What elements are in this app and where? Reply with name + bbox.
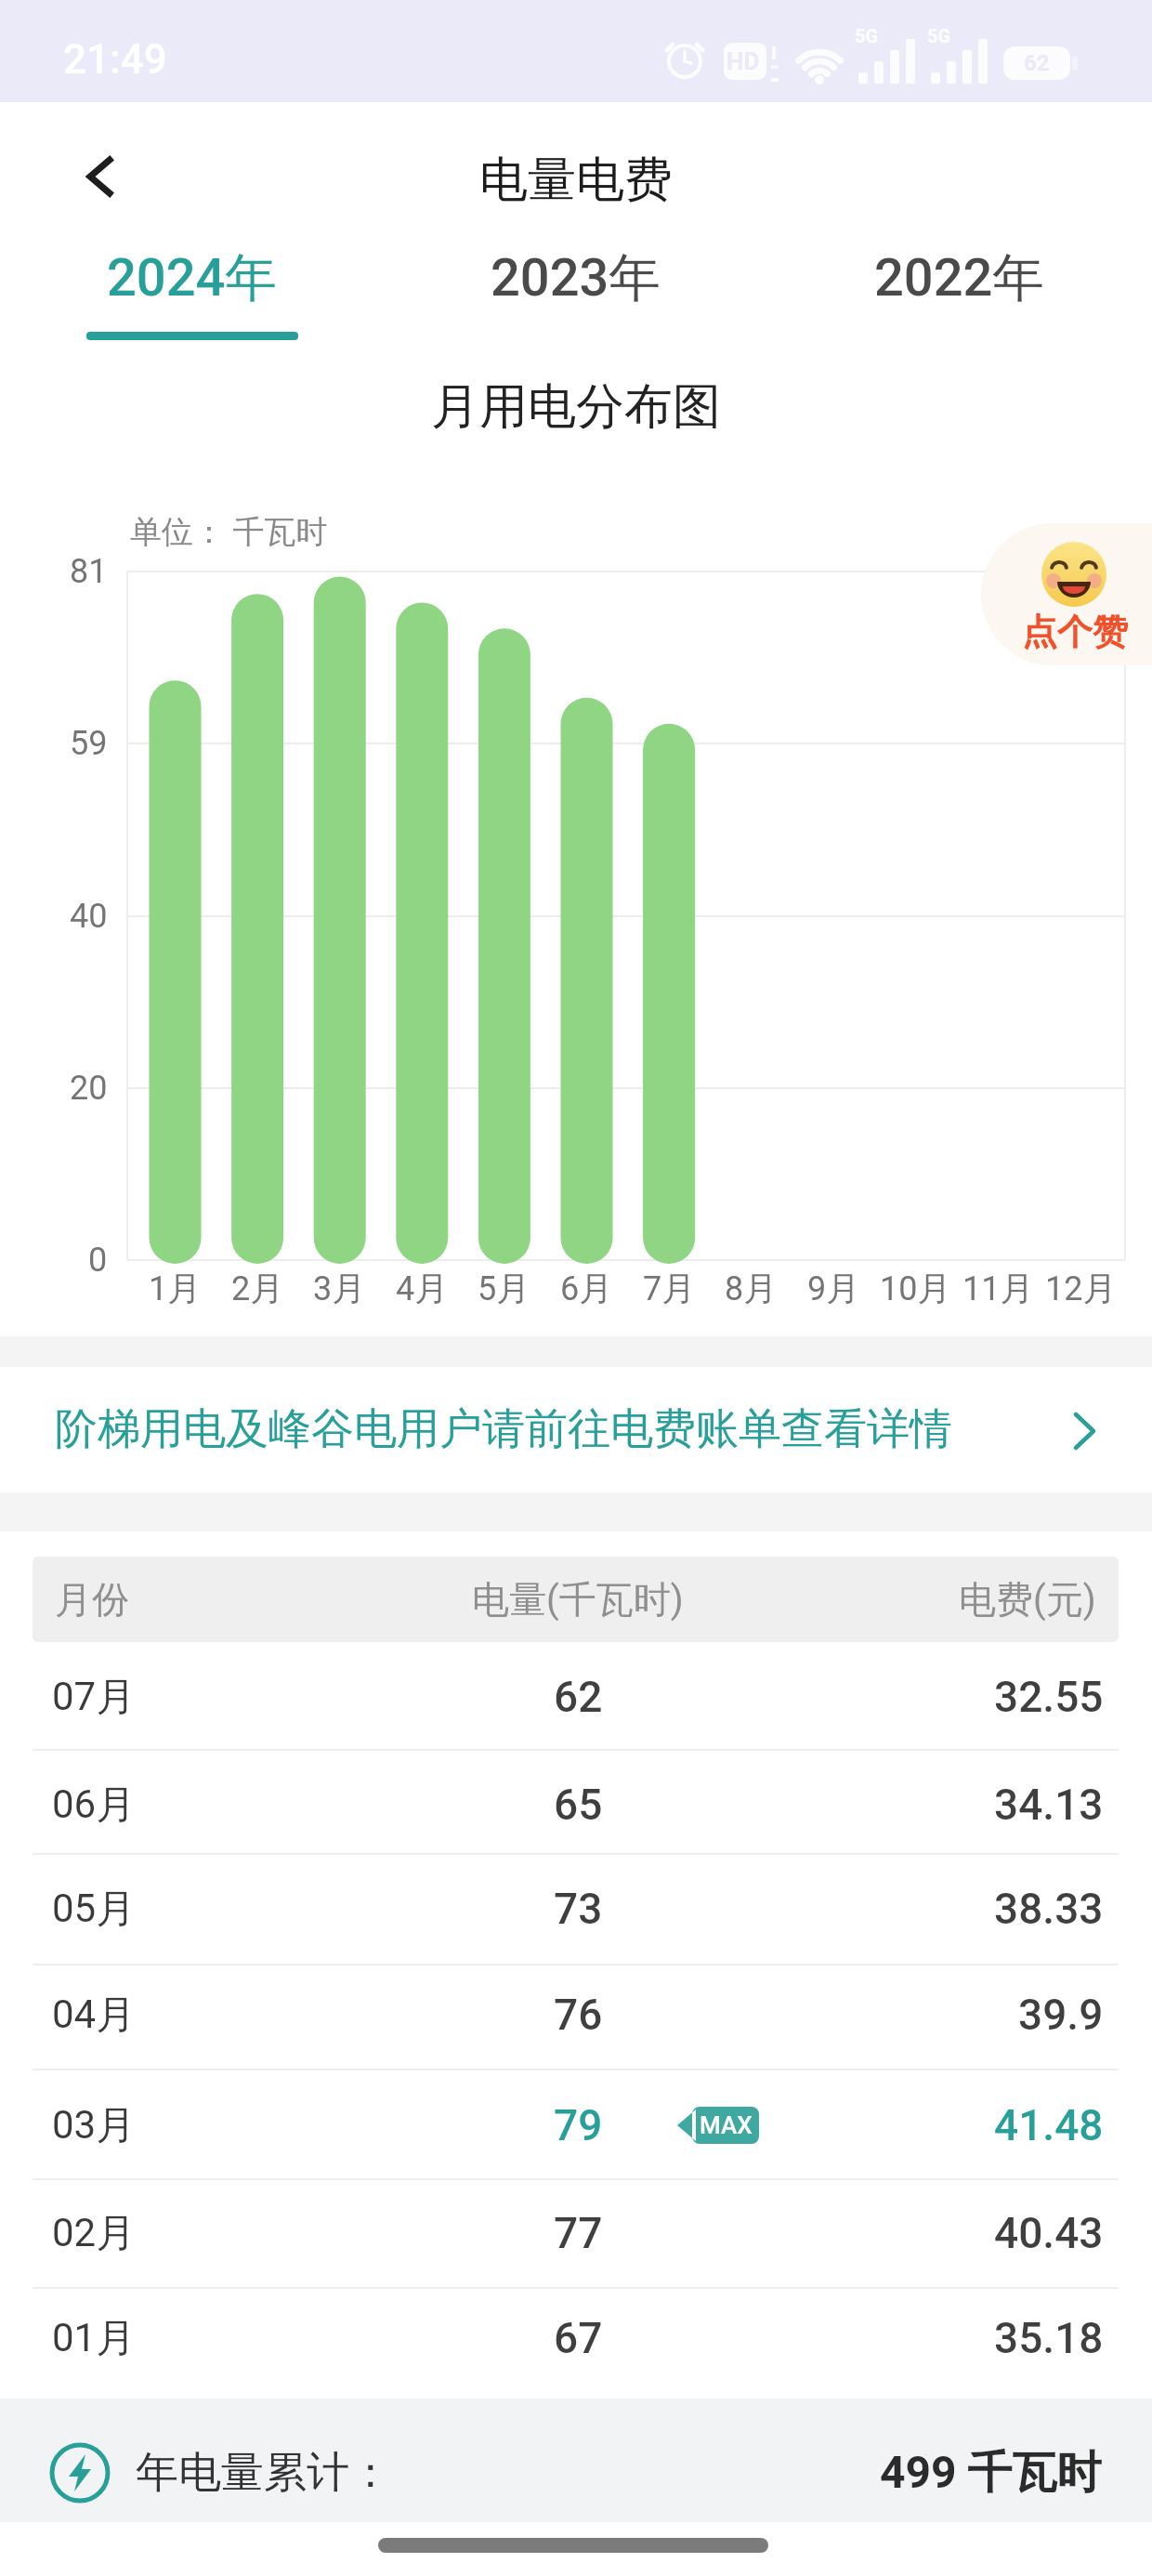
staticText: 2月 [231, 1268, 284, 1309]
staticText: 01月 [52, 2314, 136, 2363]
staticText: 35.18 [994, 2313, 1104, 2363]
staticText: 阶梯用电及峰谷电用户请前往电费账单查看详情 [55, 1402, 952, 1456]
staticText: 76 [554, 1990, 603, 2040]
staticText: 4月 [396, 1268, 449, 1309]
staticText: 79 [554, 2100, 603, 2150]
staticText: 11月 [962, 1268, 1034, 1309]
staticText: 59 [70, 724, 108, 763]
staticText: 7月 [643, 1268, 696, 1309]
staticText: 电量(千瓦时) [472, 1576, 684, 1623]
staticText: 07月 [52, 1673, 136, 1722]
staticText: 20 [70, 1069, 108, 1108]
staticText: 62 [1024, 50, 1050, 76]
staticText: HD [727, 47, 760, 75]
staticText: 月用电分布图 [431, 376, 721, 438]
staticText: 单位： 千瓦时 [130, 512, 328, 552]
staticText: 10月 [880, 1268, 951, 1309]
staticText: 06月 [52, 1781, 136, 1830]
staticText: 73 [554, 1884, 603, 1934]
staticText: 3月 [313, 1268, 366, 1309]
staticText: 65 [554, 1780, 603, 1830]
staticText: 年电量累计： [136, 2446, 392, 2500]
staticText: 2023年 [491, 245, 661, 311]
staticText: 12月 [1045, 1268, 1117, 1309]
staticText: 62 [554, 1672, 603, 1722]
staticText: 499 千瓦时 [880, 2445, 1102, 2501]
staticText: 电费(元) [959, 1576, 1096, 1623]
button[interactable] [384, 232, 767, 335]
staticText: 9月 [807, 1268, 860, 1309]
staticText: 0 [88, 1241, 108, 1280]
staticText: 02月 [52, 2209, 136, 2258]
staticText: MAX [700, 2111, 753, 2139]
staticText: 6月 [560, 1268, 613, 1309]
button[interactable] [65, 149, 130, 214]
staticText: 1月 [149, 1268, 202, 1309]
staticText: 32.55 [994, 1672, 1104, 1722]
staticText: 点个赞 [1022, 610, 1128, 654]
staticText: 41.48 [994, 2100, 1104, 2150]
staticText: 39.9 [1018, 1990, 1104, 2040]
staticText: 77 [554, 2208, 603, 2258]
staticText: 5G [927, 25, 951, 46]
staticText: 67 [554, 2313, 603, 2363]
staticText: 81 [70, 552, 108, 591]
staticText: 电量电费 [479, 150, 673, 211]
button[interactable] [0, 1367, 1152, 1492]
staticText: 05月 [52, 1885, 136, 1934]
staticText: 21:49 [63, 35, 167, 84]
staticText: 5月 [478, 1268, 530, 1309]
button[interactable] [981, 523, 1152, 665]
staticText: 8月 [725, 1268, 778, 1309]
staticText: 40.43 [994, 2208, 1104, 2258]
staticText: 月份 [55, 1576, 129, 1623]
staticText: 04月 [52, 1991, 136, 2040]
staticText: 03月 [52, 2101, 136, 2150]
button[interactable] [0, 232, 384, 335]
staticText: 40 [70, 897, 108, 936]
staticText: 38.33 [994, 1884, 1104, 1934]
button[interactable] [767, 232, 1152, 335]
staticText: 2022年 [874, 245, 1045, 311]
staticText: 5G [855, 25, 879, 46]
staticText: 2024年 [107, 245, 278, 311]
staticText: 34.13 [994, 1780, 1104, 1830]
